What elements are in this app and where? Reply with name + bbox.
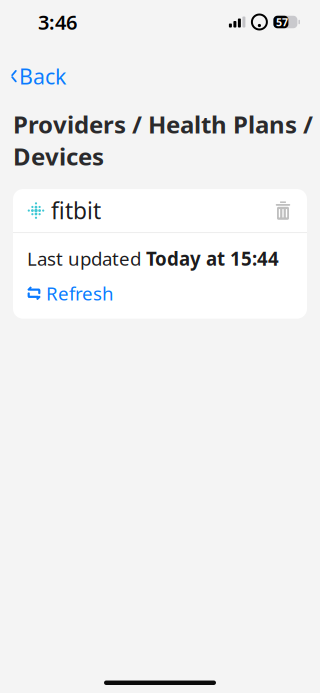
staticText: Refresh xyxy=(46,281,114,306)
staticText: 57 xyxy=(276,15,288,29)
staticText: 3:46 xyxy=(38,9,77,35)
staticText: Today at 15:44 xyxy=(146,246,279,271)
staticText: fitbit xyxy=(51,195,101,226)
staticText: Providers / Health Plans / Devices xyxy=(13,108,313,172)
button[interactable]: Back xyxy=(0,56,78,96)
staticText: Last updated xyxy=(27,246,146,271)
button[interactable]: Delete fitbit connection xyxy=(269,196,297,225)
button[interactable]: Refresh xyxy=(27,271,293,319)
staticText: Back xyxy=(19,62,66,90)
